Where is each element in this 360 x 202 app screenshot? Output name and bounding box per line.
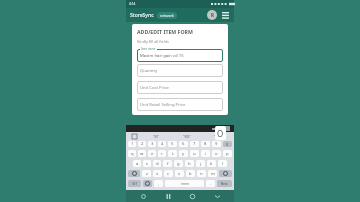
- button[interactable]: Home: [185, 190, 199, 202]
- button[interactable]: Clipboard: [211, 127, 218, 131]
- staticText: Quantity: [140, 68, 158, 74]
- staticText: "Ms": [214, 134, 222, 139]
- staticText: Unit Retail Selling Price: [140, 102, 186, 108]
- staticText: Next: [221, 182, 228, 186]
- button[interactable]: Maxim hair gain oil 15: [137, 47, 223, 60]
- button[interactable]: Next: [217, 180, 232, 187]
- button[interactable]: x: [153, 170, 162, 177]
- button[interactable]: h: [185, 160, 194, 167]
- button[interactable]: "M": [141, 134, 171, 139]
- button[interactable]: c: [164, 170, 173, 177]
- button[interactable]: 5: [168, 141, 177, 147]
- staticText: R: [211, 12, 214, 18]
- staticText: b: [189, 171, 192, 177]
- staticText: 1: [131, 141, 134, 147]
- button[interactable]: m: [208, 170, 217, 177]
- staticText: 4:14: [129, 2, 136, 6]
- button[interactable]: Back: [210, 190, 224, 202]
- staticText: StoreSync: [130, 12, 154, 19]
- button[interactable]: 6: [179, 141, 188, 147]
- button[interactable]: y: [179, 150, 188, 157]
- button[interactable]: 4: [158, 141, 166, 147]
- staticText: p: [226, 151, 229, 157]
- staticText: h: [188, 161, 191, 167]
- button[interactable]: 3: [148, 141, 156, 147]
- staticText: s: [146, 161, 149, 167]
- button[interactable]: a: [133, 160, 141, 167]
- button[interactable]: Account: [207, 10, 217, 20]
- staticText: .: [210, 181, 212, 187]
- button[interactable]: z: [142, 170, 151, 177]
- button[interactable]: "MS": [171, 134, 202, 139]
- staticText: u: [193, 151, 196, 157]
- button[interactable]: f: [163, 160, 172, 167]
- button[interactable]: d: [153, 160, 161, 167]
- button[interactable]: n: [197, 170, 206, 177]
- button[interactable]: Menu: [220, 10, 230, 20]
- button[interactable]: 7: [190, 141, 199, 147]
- button[interactable]: 9: [212, 141, 221, 147]
- button[interactable]: s: [143, 160, 151, 167]
- button[interactable]: p: [223, 150, 232, 157]
- button[interactable]: Shift: [128, 170, 140, 177]
- button[interactable]: u: [190, 150, 199, 157]
- button[interactable]: i: [201, 150, 210, 157]
- button[interactable]: ,: [154, 180, 163, 187]
- staticText: n: [200, 171, 203, 177]
- button[interactable]: Search: [136, 190, 150, 202]
- staticText: o: [215, 151, 218, 157]
- staticText: Maxim hair gain oil 15: [140, 53, 184, 59]
- button[interactable]: t: [168, 150, 177, 157]
- staticText: Item name: [141, 47, 156, 51]
- button[interactable]: Recents: [161, 190, 175, 202]
- button[interactable]: w: [138, 150, 146, 157]
- staticText: 7: [193, 141, 196, 147]
- button[interactable]: "Ms": [202, 134, 233, 139]
- button[interactable]: l: [218, 160, 227, 167]
- staticText: l: [222, 161, 224, 167]
- button[interactable]: Quantity: [137, 64, 223, 77]
- button[interactable]: .: [206, 180, 215, 187]
- staticText: c: [167, 171, 170, 177]
- staticText: i: [205, 151, 207, 157]
- button[interactable]: 1: [128, 141, 136, 147]
- staticText: 9: [215, 141, 218, 147]
- staticText: Unit Cost Price: [140, 85, 169, 91]
- staticText: 8: [204, 141, 207, 147]
- button[interactable]: Emoji: [143, 180, 152, 187]
- button[interactable]: Unit Retail Selling Price: [137, 98, 223, 111]
- button[interactable]: r: [158, 150, 166, 157]
- button[interactable]: Backspace: [219, 170, 232, 177]
- button[interactable]: k: [207, 160, 216, 167]
- staticText: j: [200, 161, 202, 167]
- button[interactable]: [165, 180, 204, 187]
- staticText: 4: [161, 141, 164, 147]
- staticText: ADD/EDIT ITEM FORM: [137, 28, 193, 35]
- staticText: !#1: [132, 181, 138, 186]
- staticText: d: [156, 161, 159, 167]
- button[interactable]: j: [196, 160, 205, 167]
- button[interactable]: 2: [138, 141, 146, 147]
- button[interactable]: v: [175, 170, 184, 177]
- staticText: O: [217, 128, 224, 139]
- staticText: w: [140, 151, 144, 157]
- staticText: 2: [141, 141, 144, 147]
- button[interactable]: 0: [223, 141, 232, 147]
- staticText: k: [210, 161, 213, 167]
- button[interactable]: Sticker: [127, 134, 141, 139]
- staticText: 3: [151, 141, 154, 147]
- button[interactable]: network: [157, 12, 177, 19]
- staticText: t: [172, 151, 174, 157]
- button[interactable]: q: [128, 150, 136, 157]
- button[interactable]: 8: [201, 141, 210, 147]
- button[interactable]: e: [148, 150, 156, 157]
- button[interactable]: b: [186, 170, 195, 177]
- staticText: ,: [158, 181, 160, 187]
- staticText: g: [177, 161, 180, 167]
- button[interactable]: Unit Cost Price: [137, 81, 223, 94]
- button[interactable]: o: [212, 150, 221, 157]
- staticText: "M": [153, 134, 159, 139]
- button[interactable]: g: [174, 160, 183, 167]
- button[interactable]: Keyboard settings: [222, 126, 230, 131]
- button[interactable]: !#1: [128, 180, 141, 187]
